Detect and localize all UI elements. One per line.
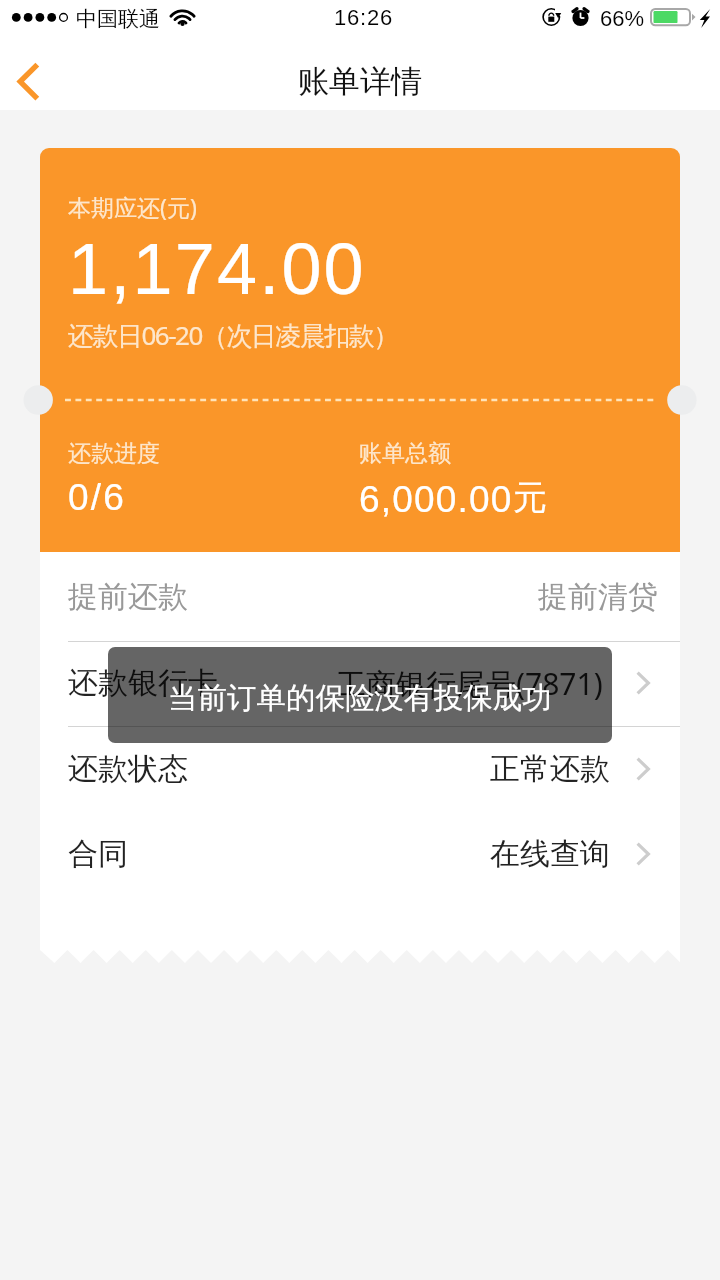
staticText: 1,174.00 bbox=[68, 229, 366, 309]
staticText: 工商银行尾号(7871) bbox=[336, 663, 603, 704]
button[interactable]: Back bbox=[0, 37, 74, 110]
button[interactable]: 合同 bbox=[40, 811, 680, 897]
staticText: 合同 bbox=[68, 835, 128, 873]
staticText: 正常还款 bbox=[490, 750, 610, 788]
staticText: 账单详情 bbox=[0, 62, 720, 101]
staticText: 账单总额 bbox=[359, 439, 451, 468]
staticText: 元 bbox=[513, 476, 547, 519]
staticText: 6,000.00 bbox=[359, 479, 513, 520]
staticText: 提前还款 bbox=[68, 578, 188, 616]
staticText: 中国联通 bbox=[76, 6, 160, 32]
staticText: 本期应还(元) bbox=[68, 191, 197, 222]
staticText: 66% bbox=[600, 6, 645, 31]
staticText: 还款进度 bbox=[68, 439, 160, 468]
staticText: 0/6 bbox=[68, 477, 127, 518]
staticText: 提前清贷 bbox=[538, 578, 658, 616]
staticText: 还款日06-20（次日凌晨扣款） bbox=[68, 317, 398, 353]
button[interactable]: 提前还款 bbox=[40, 554, 680, 640]
button[interactable]: 还款银行卡 bbox=[40, 640, 680, 726]
staticText: 还款状态 bbox=[68, 750, 188, 788]
staticText: 在线查询 bbox=[490, 835, 610, 873]
staticText: 当前订单的保险没有投保成功 bbox=[168, 680, 552, 717]
button[interactable]: 还款状态 bbox=[40, 726, 680, 812]
staticText: 16:26 bbox=[334, 5, 394, 30]
staticText: 还款银行卡 bbox=[68, 664, 218, 702]
